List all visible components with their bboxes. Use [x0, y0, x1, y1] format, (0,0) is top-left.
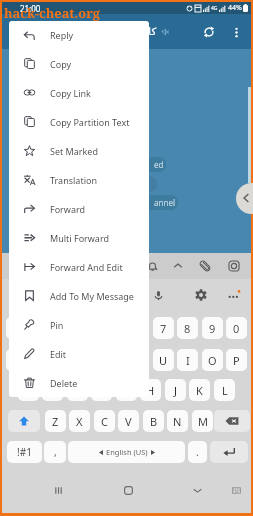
staticText: 21:00 — [20, 3, 41, 14]
button[interactable]: Reply — [9, 21, 149, 49]
button[interactable]: Camera — [223, 254, 245, 278]
button[interactable]: D — [67, 379, 88, 401]
staticText: S — [49, 383, 56, 398]
button[interactable]: Recents — [44, 476, 72, 504]
button[interactable]: Attach — [194, 254, 216, 278]
button[interactable]: O — [202, 349, 223, 371]
button[interactable]: English (US) — [68, 441, 185, 463]
button[interactable]: Pin — [9, 310, 149, 339]
button[interactable]: 0 — [226, 317, 247, 339]
button[interactable]: A — [18, 379, 39, 401]
staticText: H — [146, 383, 155, 398]
button[interactable]: 8 — [177, 317, 198, 339]
button[interactable]: C — [94, 410, 115, 432]
button[interactable]: Settings — [190, 283, 212, 307]
staticText: Forward And Edit — [50, 261, 123, 273]
button[interactable]: Voice message — [147, 283, 169, 307]
button[interactable]: Translation — [9, 165, 149, 194]
staticText: O — [208, 353, 217, 368]
button[interactable]: 2 — [30, 317, 51, 339]
button[interactable]: Key — [210, 441, 248, 463]
button[interactable]: Collapse — [167, 254, 189, 278]
staticText: K — [196, 383, 203, 398]
button[interactable]: Refresh — [198, 21, 220, 43]
button[interactable]: H — [140, 379, 161, 401]
button[interactable]: Back — [183, 476, 211, 504]
button[interactable]: Key — [8, 410, 40, 432]
button[interactable]: Scroll to bottom — [236, 183, 253, 214]
button[interactable]: B — [143, 410, 164, 432]
staticText: 9 — [209, 321, 216, 336]
staticText: C — [101, 414, 108, 429]
staticText: Set Marked — [50, 145, 98, 157]
button[interactable]: 1 — [6, 317, 27, 339]
staticText: 7 — [160, 321, 167, 336]
staticText: J — [174, 383, 178, 398]
button[interactable]: Key — [214, 410, 250, 432]
button[interactable]: Home — [114, 476, 142, 504]
button[interactable]: Z — [45, 410, 66, 432]
button[interactable]: 3 — [55, 317, 76, 339]
button[interactable]: F — [91, 379, 112, 401]
button[interactable]: X — [69, 410, 90, 432]
button[interactable]: Add To My Message — [9, 281, 149, 310]
staticText: , — [54, 445, 57, 459]
staticText: Translation — [50, 174, 97, 186]
button[interactable]: U — [153, 349, 174, 371]
button[interactable]: Set Marked — [9, 136, 149, 165]
button[interactable]: L — [214, 379, 235, 401]
button[interactable]: Copy — [9, 49, 149, 78]
staticText: D — [73, 383, 82, 398]
button[interactable]: Delete — [9, 368, 149, 397]
button[interactable]: Copy Link — [9, 78, 149, 107]
button[interactable]: Multi Forward — [9, 223, 149, 252]
button[interactable]: Forward — [9, 194, 149, 223]
staticText: Add To My Message — [50, 290, 134, 302]
button[interactable]: N — [167, 410, 188, 432]
button[interactable]: Notifications — [141, 254, 163, 278]
button[interactable]: Forward And Edit — [9, 252, 149, 281]
button[interactable]: More options — [226, 22, 246, 42]
staticText: X — [76, 414, 83, 429]
staticText: L — [222, 383, 228, 398]
button[interactable]: , — [44, 441, 66, 463]
button[interactable]: Q — [6, 349, 27, 371]
staticText: A — [25, 383, 33, 398]
staticText: 44% — [228, 3, 242, 13]
button[interactable]: J — [165, 379, 186, 401]
button[interactable]: K — [189, 379, 210, 401]
button[interactable]: M — [192, 410, 213, 432]
button[interactable]: . — [188, 441, 207, 463]
button[interactable]: Copy Partition Text — [9, 107, 149, 136]
button[interactable]: 7 — [153, 317, 174, 339]
button[interactable]: More — [223, 283, 245, 307]
button[interactable]: Hide keyboard — [222, 476, 250, 504]
button[interactable]: G — [116, 379, 137, 401]
button[interactable]: I — [177, 349, 198, 371]
button[interactable]: !#1 — [7, 441, 42, 463]
button[interactable]: S — [42, 379, 63, 401]
staticText: 4G — [211, 5, 218, 12]
staticText: Copy Link — [50, 87, 91, 99]
button[interactable]: E — [55, 349, 76, 371]
button[interactable]: 9 — [202, 317, 223, 339]
button[interactable]: W — [30, 349, 51, 371]
button[interactable]: V — [118, 410, 139, 432]
button[interactable]: Edit — [9, 339, 149, 368]
button[interactable]: P — [226, 349, 247, 371]
staticText: B — [150, 414, 158, 429]
staticText: Copy Partition Text — [50, 116, 130, 128]
